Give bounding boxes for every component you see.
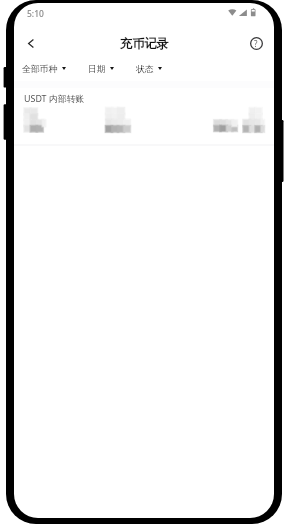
button[interactable]: Back bbox=[18, 30, 44, 56]
button[interactable]: 日期 bbox=[88, 61, 114, 78]
staticText: 全部币种 bbox=[22, 64, 58, 75]
staticText: 5:10 bbox=[27, 8, 44, 20]
staticText: 日期 bbox=[88, 64, 106, 75]
staticText: 状态 bbox=[136, 64, 154, 75]
staticText: ? bbox=[254, 38, 258, 49]
button[interactable]: Help bbox=[244, 31, 268, 55]
button[interactable]: 状态 bbox=[136, 61, 162, 78]
button[interactable]: 全部币种 bbox=[22, 61, 66, 78]
staticText: 充币记录 bbox=[120, 36, 169, 51]
staticText: USDT 内部转账 bbox=[24, 92, 85, 104]
